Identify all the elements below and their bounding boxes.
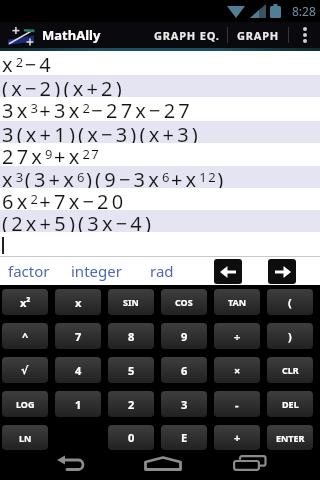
button[interactable]: 8 [108,323,154,349]
button[interactable]: GRAPH [228,22,288,48]
staticText: - [235,397,239,412]
button[interactable]: (x−2)(x+2) [0,75,320,97]
staticText: GRAPH [237,28,280,43]
staticText: x2−4 [2,51,54,75]
button[interactable]: - [214,391,260,417]
staticText: CLR [282,364,299,376]
button[interactable]: + [214,425,260,450]
staticText: 8 [128,329,135,344]
staticText: DEL [282,398,299,410]
button[interactable]: factor [8,261,50,281]
button[interactable]: CLR [267,357,313,383]
button[interactable]: ) [267,323,313,349]
staticText: + [234,430,241,445]
button[interactable]: 2 [108,391,154,417]
button[interactable]: 1 [55,391,101,417]
button[interactable]: x2−4 [0,51,320,75]
button[interactable] [268,259,296,284]
button[interactable]: 27x9+x27 [0,143,320,166]
button[interactable]: 0 [108,425,154,450]
staticText: ÷ [234,329,241,344]
button[interactable] [0,450,106,480]
button[interactable]: ^ [2,323,48,349]
staticText: E [181,430,188,445]
button[interactable]: 3 [161,391,207,417]
staticText: TAN [228,296,247,308]
button[interactable]: ( [267,289,313,315]
button[interactable]: ENTER [267,425,313,450]
button[interactable]: TAN [214,289,260,315]
button[interactable]: √ [2,357,48,383]
button[interactable]: 6x2+7x−20 [0,188,320,210]
button[interactable]: ÷ [214,323,260,349]
staticText: COS [175,296,193,308]
button[interactable]: 6 [161,357,207,383]
staticText: 1 [75,397,82,412]
staticText: ( [288,295,292,310]
staticText: 5 [128,363,135,378]
staticText: √ [21,364,29,377]
staticText: 7 [75,329,82,344]
staticText: SIN [123,296,139,308]
button[interactable]: SIN [108,289,154,315]
staticText: x3(3+x6)(9−3x6+x12) [2,166,227,188]
staticText: x² [20,295,31,310]
staticText: 3x3+3x2−27x−27 [2,97,193,121]
staticText: LN [19,432,32,444]
button[interactable] [106,450,213,480]
button[interactable] [213,450,320,480]
staticText: (2x+5)(3x−4) [2,210,155,232]
button[interactable] [0,232,320,256]
button[interactable]: LN [2,425,48,450]
button[interactable]: × [214,357,260,383]
button[interactable]: 4 [55,357,101,383]
staticText: GRAPH EQ. [154,28,220,43]
staticText: 3 [181,397,188,412]
staticText: 6x2+7x−20 [2,188,127,210]
button[interactable]: LOG [2,391,48,417]
staticText: LOG [16,398,35,410]
button[interactable]: integer [71,261,122,281]
staticText: 0 [128,430,135,445]
staticText: 27x9+x27 [2,143,101,166]
button[interactable]: 5 [108,357,154,383]
staticText: 3(x+1)(x−3)(x+3) [2,121,202,143]
button[interactable]: 3x3+3x2−27x−27 [0,97,320,121]
staticText: 2 [128,397,135,412]
button[interactable]: GRAPH EQ. [147,22,227,48]
staticText: × [234,363,241,378]
button[interactable]: 7 [55,323,101,349]
staticText: 6 [181,363,188,378]
button[interactable]: COS [161,289,207,315]
button[interactable]: 3(x+1)(x−3)(x+3) [0,121,320,143]
button[interactable]: (2x+5)(3x−4) [0,210,320,232]
button[interactable]: DEL [267,391,313,417]
button[interactable]: x [55,289,101,315]
button[interactable]: E [161,425,207,450]
staticText: 8:28 [292,3,316,19]
button[interactable]: rad [150,261,174,281]
staticText: MathAlly [42,26,101,44]
button[interactable] [289,22,320,48]
button[interactable]: x3(3+x6)(9−3x6+x12) [0,166,320,188]
staticText: ) [288,329,292,344]
button[interactable]: 9 [161,323,207,349]
staticText: 9 [181,329,188,344]
staticText: 4 [75,363,82,378]
button[interactable]: x² [2,289,48,315]
staticText: x [75,295,82,310]
staticText: ^ [22,329,29,344]
staticText: (x−2)(x+2) [2,75,125,97]
button[interactable] [214,259,242,284]
staticText: ENTER [276,432,305,444]
